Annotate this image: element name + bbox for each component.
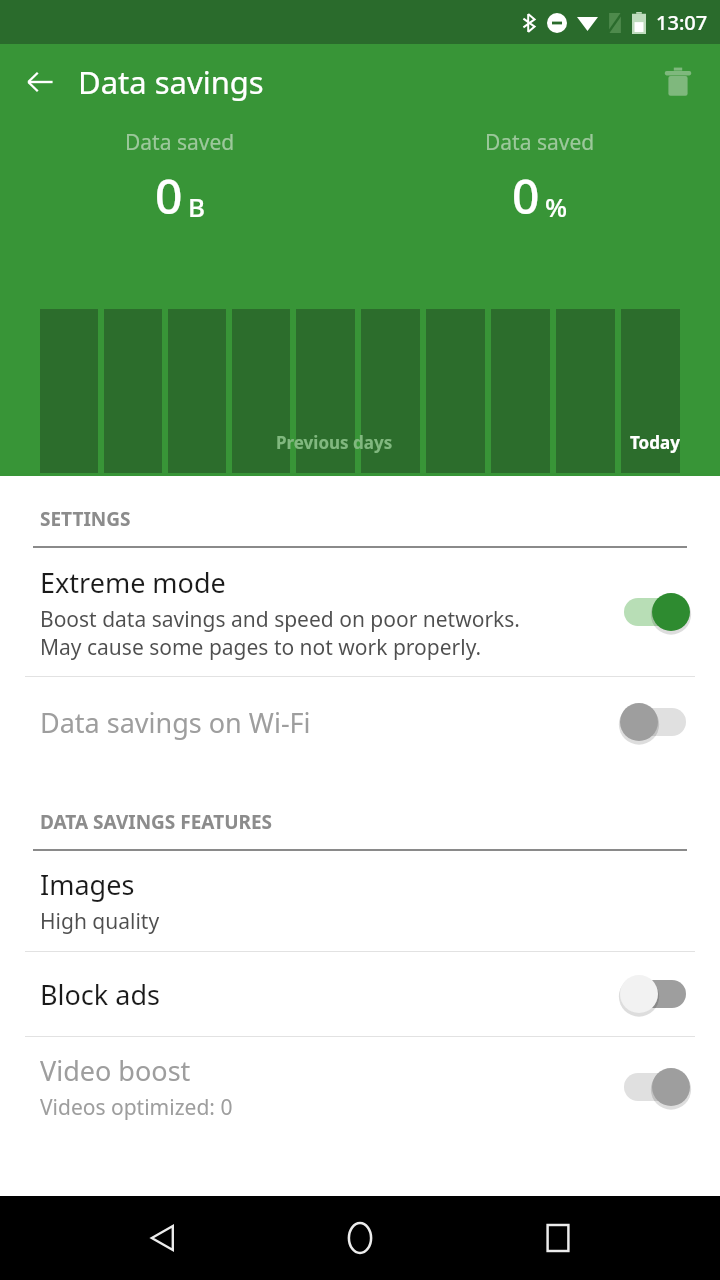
- button[interactable]: Images: [0, 851, 720, 951]
- staticText: B: [188, 189, 206, 224]
- staticText: Images: [40, 866, 135, 903]
- button[interactable]: Home: [325, 1203, 395, 1273]
- button[interactable]: Toggle: [618, 698, 692, 746]
- button[interactable]: Video boost: [0, 1037, 720, 1137]
- button[interactable]: Recents: [523, 1203, 593, 1273]
- staticText: 13:07: [656, 9, 708, 36]
- staticText: Previous days: [276, 431, 393, 454]
- staticText: Extreme mode: [40, 564, 226, 601]
- staticText: SETTINGS: [40, 506, 131, 532]
- button[interactable]: Toggle: [618, 588, 692, 636]
- staticText: Video boost: [40, 1052, 191, 1089]
- staticText: High quality: [40, 907, 160, 936]
- staticText: Previous days: [268, 472, 385, 476]
- button[interactable]: Delete: [652, 56, 704, 108]
- button[interactable]: Data savings on Wi-Fi: [0, 677, 720, 767]
- staticText: Videos optimized: 0: [40, 1093, 233, 1122]
- staticText: Today: [630, 431, 680, 454]
- button[interactable]: Extreme mode: [0, 548, 720, 676]
- staticText: DATA SAVINGS FEATURES: [40, 809, 273, 835]
- button[interactable]: Toggle: [618, 970, 692, 1018]
- staticText: 0: [512, 163, 540, 228]
- staticText: Boost data savings and speed on poor net…: [40, 605, 520, 661]
- staticText: Data savings on Wi-Fi: [40, 704, 311, 741]
- button[interactable]: Back: [128, 1203, 198, 1273]
- staticText: %: [545, 189, 568, 224]
- button[interactable]: Block ads: [0, 952, 720, 1036]
- button[interactable]: Back: [14, 56, 66, 108]
- staticText: Block ads: [40, 976, 160, 1013]
- button[interactable]: Toggle: [618, 1063, 692, 1111]
- staticText: Data saved: [125, 128, 235, 157]
- staticText: Data saved: [485, 128, 595, 157]
- staticText: Data savings: [78, 61, 264, 103]
- staticText: 0: [155, 163, 183, 228]
